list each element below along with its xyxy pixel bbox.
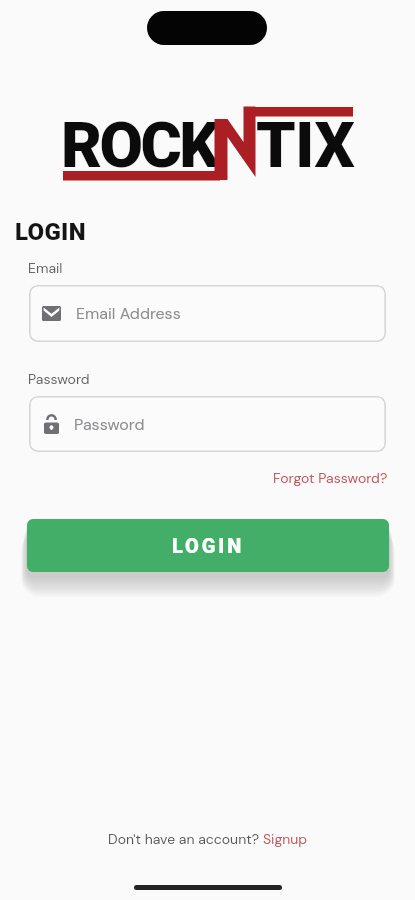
button[interactable]: Forgot Password? — [268, 466, 393, 490]
button[interactable]: LOGIN — [27, 519, 389, 572]
staticText: Forgot Password? — [273, 469, 388, 487]
staticText: LOGIN — [172, 534, 245, 557]
staticText: ROCK — [61, 109, 217, 183]
staticText: LOGIN — [15, 218, 86, 246]
staticText: Don't have an account? — [108, 830, 263, 848]
staticText: Signup — [263, 830, 308, 848]
staticText: Email — [28, 259, 63, 277]
staticText: Email Address — [76, 303, 181, 324]
staticText: Password — [28, 370, 90, 388]
staticText: TIX — [256, 109, 355, 183]
staticText: Password — [74, 414, 145, 435]
button[interactable]: Password — [29, 396, 386, 452]
button[interactable]: Signup — [263, 830, 308, 848]
button[interactable]: Email Address — [29, 285, 386, 342]
